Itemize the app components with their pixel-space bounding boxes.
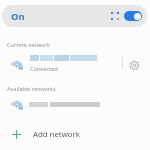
- button[interactable]: On: [2, 5, 147, 27]
- staticText: On: [11, 10, 25, 23]
- staticText: Current network: [7, 41, 50, 48]
- button[interactable]: Add network: [0, 125, 150, 143]
- button[interactable]: Scan QR code: [108, 9, 122, 23]
- staticText: Add network: [33, 129, 80, 140]
- button[interactable]: Connected: [0, 52, 150, 76]
- button[interactable]: [0, 97, 150, 111]
- staticText: Connected: [30, 65, 58, 72]
- staticText: Available networks: [7, 85, 56, 92]
- button[interactable]: Network settings: [125, 56, 143, 74]
- button[interactable]: Wi-Fi on: [124, 11, 142, 21]
